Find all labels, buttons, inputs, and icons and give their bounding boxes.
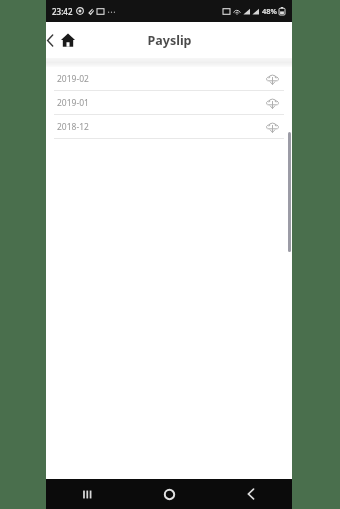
button[interactable]: Home	[55, 27, 81, 53]
button[interactable]: 2019-01	[46, 91, 292, 114]
staticText: 2019-02	[57, 73, 263, 85]
button[interactable]: Download 2019-02	[263, 70, 281, 88]
button[interactable]: Download 2018-12	[263, 118, 281, 136]
staticText: 2018-12	[57, 121, 263, 133]
staticText: 2019-01	[57, 97, 263, 109]
button[interactable]: Recent apps	[46, 479, 128, 509]
button[interactable]: Download 2019-01	[263, 94, 281, 112]
button[interactable]: Back	[46, 28, 54, 52]
staticText: Payslip	[147, 32, 192, 49]
button[interactable]: 2018-12	[46, 115, 292, 138]
button[interactable]: Back	[210, 479, 292, 509]
button[interactable]: Home	[128, 479, 210, 509]
staticText: 48%	[262, 6, 277, 16]
button[interactable]: 2019-02	[46, 67, 292, 90]
staticText: 23:42	[52, 6, 73, 17]
